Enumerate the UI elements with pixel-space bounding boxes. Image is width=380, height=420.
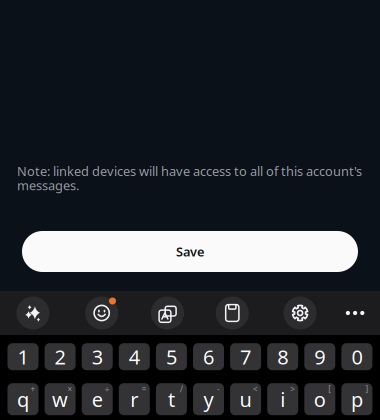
staticText: Note: linked devices will have access to… xyxy=(17,164,362,192)
button[interactable]: Emoji xyxy=(85,291,118,335)
button[interactable]: 7 xyxy=(230,343,261,370)
staticText: [ xyxy=(328,384,331,395)
staticText: r xyxy=(130,386,138,413)
staticText: q xyxy=(17,386,29,413)
button[interactable]: y xyxy=(193,383,224,415)
button[interactable]: i xyxy=(267,383,298,415)
staticText: Save xyxy=(176,243,204,260)
button[interactable]: Save xyxy=(22,231,358,272)
staticText: 8 xyxy=(277,343,288,370)
staticText: i xyxy=(280,386,285,413)
button[interactable]: u xyxy=(230,383,261,415)
button[interactable]: q xyxy=(7,383,38,415)
staticText: e xyxy=(92,386,103,413)
button[interactable]: 8 xyxy=(267,343,298,370)
button[interactable]: Translate xyxy=(151,291,184,335)
staticText: 3 xyxy=(92,343,103,370)
staticText: / xyxy=(180,384,183,395)
button[interactable]: 4 xyxy=(119,343,150,370)
staticText: > xyxy=(290,384,295,395)
button[interactable]: t xyxy=(156,383,187,415)
staticText: 4 xyxy=(129,343,140,370)
button[interactable]: o xyxy=(304,383,335,415)
button[interactable]: 1 xyxy=(7,343,38,370)
staticText: 9 xyxy=(314,343,325,370)
staticText: 0 xyxy=(351,343,362,370)
staticText: - xyxy=(217,384,220,395)
button[interactable]: 0 xyxy=(341,343,372,370)
staticText: t xyxy=(168,386,175,413)
staticText: + xyxy=(30,384,35,395)
button[interactable]: 2 xyxy=(45,343,76,370)
staticText: 2 xyxy=(55,343,66,370)
button[interactable]: More xyxy=(339,291,372,335)
button[interactable]: Clipboard xyxy=(216,291,249,335)
staticText: < xyxy=(253,384,258,395)
button[interactable]: 6 xyxy=(193,343,224,370)
button[interactable]: r xyxy=(119,383,150,415)
staticText: = xyxy=(142,384,147,395)
staticText: y xyxy=(203,386,213,413)
staticText: 6 xyxy=(203,343,214,370)
staticText: w xyxy=(52,386,68,413)
button[interactable]: Writing tools xyxy=(16,291,49,335)
staticText: p xyxy=(351,386,363,413)
button[interactable]: 5 xyxy=(156,343,187,370)
button[interactable]: 3 xyxy=(82,343,113,370)
staticText: u xyxy=(240,386,252,413)
staticText: 7 xyxy=(240,343,251,370)
staticText: ÷ xyxy=(105,384,110,395)
button[interactable]: w xyxy=(45,383,76,415)
button[interactable]: 9 xyxy=(304,343,335,370)
staticText: 1 xyxy=(17,343,28,370)
button[interactable]: e xyxy=(82,383,113,415)
staticText: o xyxy=(314,386,326,413)
button[interactable]: Keyboard settings xyxy=(284,291,317,335)
staticText: × xyxy=(68,384,73,395)
staticText: ] xyxy=(365,384,368,395)
staticText: 5 xyxy=(166,343,177,370)
button[interactable]: p xyxy=(341,383,372,415)
